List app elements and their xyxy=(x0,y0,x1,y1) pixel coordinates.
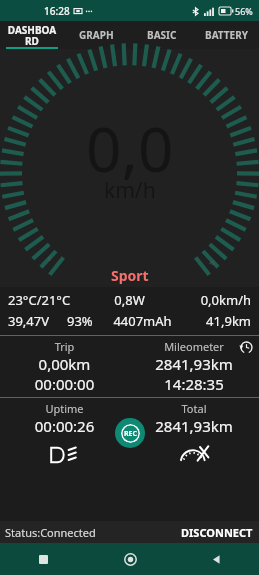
staticText: 00:00:26 xyxy=(0,416,129,436)
button[interactable]: DASHBOARD xyxy=(0,21,64,49)
staticText: 2841,93km xyxy=(129,416,259,436)
button[interactable]: BASIC xyxy=(129,21,194,49)
staticText: 2841,93km xyxy=(129,354,259,374)
button[interactable]: Cruise control xyxy=(129,442,259,468)
staticText: Sport xyxy=(111,266,149,285)
staticText: Trip xyxy=(0,339,129,354)
button[interactable]: BATTERY xyxy=(194,21,259,49)
staticText: BATTERY xyxy=(205,28,249,42)
staticText: Status:Connected xyxy=(5,525,96,540)
staticText: BASIC xyxy=(147,28,177,42)
button[interactable]: GRAPH xyxy=(64,21,129,49)
button[interactable]: Reset trip history xyxy=(237,338,255,356)
staticText: 4407mAh xyxy=(105,312,180,330)
staticText: 14:28:35 xyxy=(129,374,259,394)
staticText: DISCONNECT xyxy=(181,525,253,540)
staticText: 0,8W xyxy=(95,291,164,309)
staticText: 23°C/21°C xyxy=(8,291,95,309)
staticText: 16:28 xyxy=(44,4,70,18)
button[interactable]: Recents xyxy=(0,543,87,575)
staticText: Total xyxy=(129,401,259,416)
staticText: 00:00:00 xyxy=(0,374,129,394)
staticText: km/h xyxy=(104,176,156,205)
staticText: Mileometer xyxy=(129,339,259,354)
staticText: 0,0km/h xyxy=(164,291,251,309)
staticText: 56% xyxy=(235,5,253,17)
button[interactable]: Back xyxy=(173,543,259,575)
button[interactable]: DISCONNECT xyxy=(175,523,259,542)
staticText: DASHBOARD xyxy=(7,23,57,48)
staticText: REC xyxy=(124,429,138,439)
staticText: 41,9km xyxy=(180,312,251,330)
button[interactable]: Home xyxy=(87,543,173,575)
staticText: 45 xyxy=(209,260,215,267)
staticText: 0,0 xyxy=(86,106,174,190)
button[interactable]: Record xyxy=(115,418,145,448)
staticText: 93% xyxy=(67,312,105,330)
staticText: 0,00km xyxy=(0,354,129,374)
staticText: Uptime xyxy=(0,401,129,416)
button[interactable]: Headlight xyxy=(0,442,129,468)
staticText: GRAPH xyxy=(79,28,114,42)
staticText: 39,47V xyxy=(8,312,67,330)
staticText: 0 xyxy=(48,256,51,263)
